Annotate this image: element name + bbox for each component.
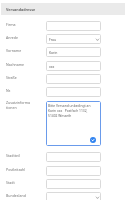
button[interactable]: Frau xyxy=(46,34,101,44)
button[interactable] xyxy=(46,87,101,97)
staticText: Nachname xyxy=(6,62,44,67)
button[interactable]: Bitte Versand unbedingt an Karin xxx Pos… xyxy=(46,101,101,146)
button[interactable] xyxy=(46,166,101,176)
button[interactable] xyxy=(46,21,101,31)
button[interactable]: Versandadresse xyxy=(1,3,125,15)
staticText: Nr. xyxy=(6,88,44,93)
button[interactable]: Eingabe bestätigt xyxy=(90,137,96,143)
staticText: Karin xyxy=(49,50,58,55)
staticText: Anrede xyxy=(6,35,44,40)
staticText: Zusatzinformationen xyxy=(6,100,31,110)
staticText: xxx xyxy=(49,64,55,69)
staticText: Stadt xyxy=(6,180,44,185)
staticText: Firma xyxy=(6,22,44,27)
staticText: Frau xyxy=(49,37,57,42)
button[interactable]: Karin xyxy=(46,47,101,57)
button[interactable] xyxy=(46,179,101,189)
staticText: Bundesland xyxy=(6,193,44,198)
button[interactable] xyxy=(46,74,101,84)
staticText: Versandadresse xyxy=(6,7,36,12)
staticText: Postleitzahl xyxy=(6,167,44,172)
button[interactable]: xxx xyxy=(46,61,101,71)
staticText: Stadtteil xyxy=(6,153,44,158)
staticText: Vorname xyxy=(6,48,44,53)
button[interactable] xyxy=(46,192,101,200)
staticText: Straße xyxy=(6,75,44,80)
staticText: Bitte Versand unbedingt an Karin xxx Pos… xyxy=(48,103,91,118)
button[interactable] xyxy=(46,152,101,162)
